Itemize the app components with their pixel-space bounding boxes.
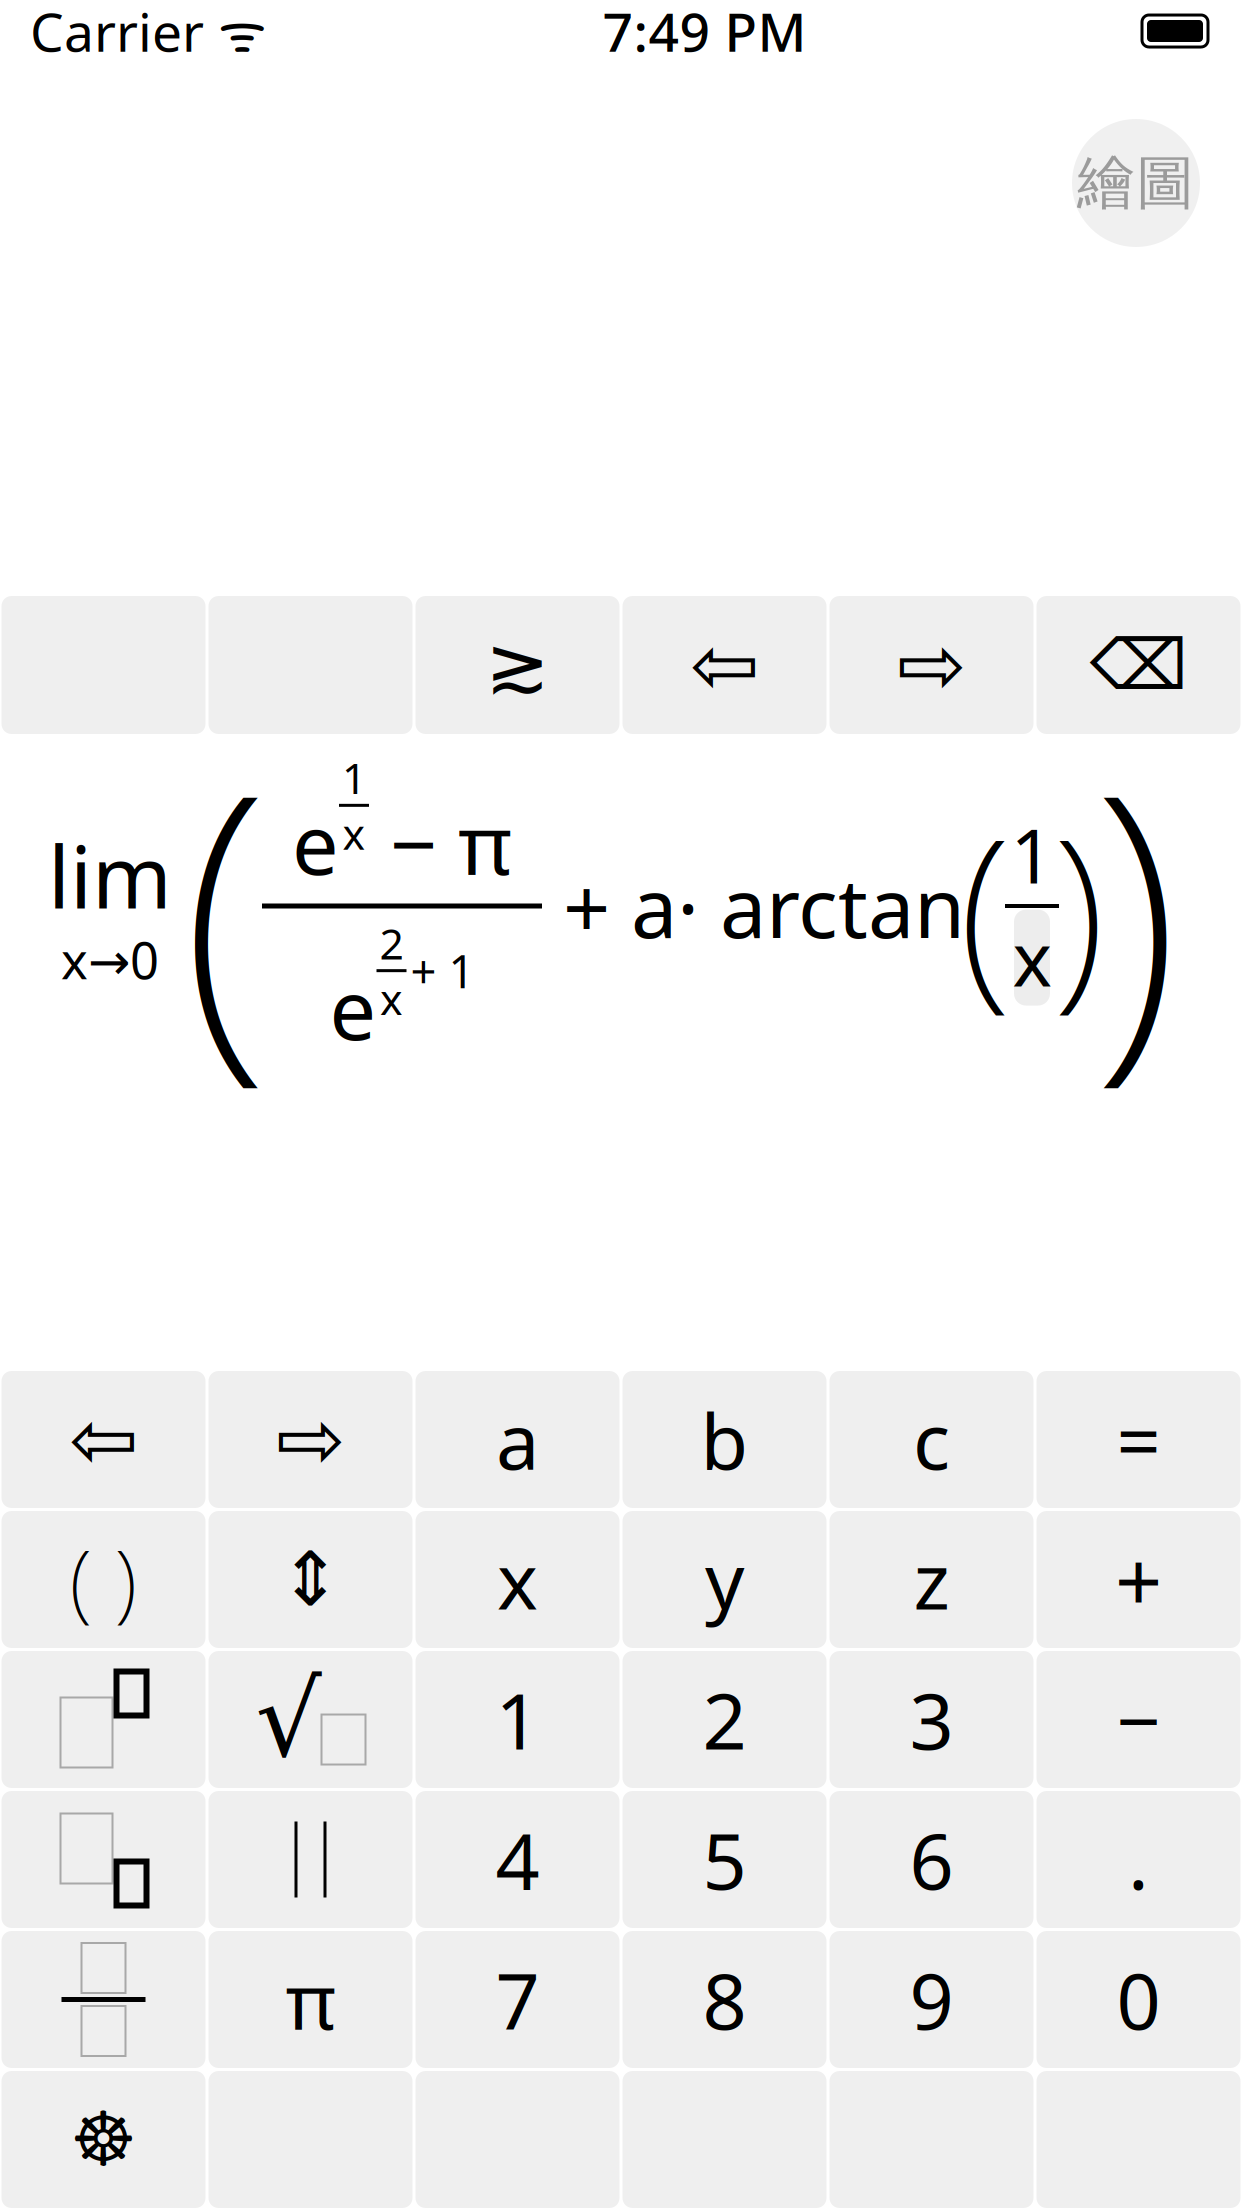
staticText: ( — [958, 773, 1011, 1039]
button[interactable]: Settings — [1, 2071, 205, 2208]
staticText: ⇦ — [690, 618, 759, 712]
staticText: 繪圖 — [1077, 147, 1195, 219]
button[interactable]: 5 — [622, 1791, 826, 1928]
button[interactable]: 6 — [829, 1791, 1033, 1928]
staticText: − π — [369, 788, 512, 897]
staticText: ᯤ — [204, 0, 267, 66]
button[interactable]: − — [1036, 1651, 1240, 1788]
button[interactable]: y — [622, 1511, 826, 1648]
button[interactable]: Fraction — [1, 1931, 205, 2068]
staticText: . — [1128, 1808, 1149, 1911]
button[interactable]: z — [829, 1511, 1033, 1648]
staticText: x→0 — [61, 926, 159, 993]
staticText: + — [1115, 1525, 1162, 1634]
button[interactable]: Move left — [1, 1371, 205, 1508]
staticText: x — [1012, 908, 1051, 1007]
button[interactable]: π — [208, 1931, 412, 2068]
staticText: Carrier — [30, 0, 204, 66]
staticText: 2 — [379, 914, 403, 971]
staticText: 4 — [495, 1808, 539, 1911]
staticText: 9 — [909, 1948, 953, 2051]
staticText: 8 — [702, 1948, 746, 2051]
button[interactable]: Delete — [1036, 596, 1240, 734]
button[interactable]: Greater or equal — [415, 596, 619, 734]
staticText: 2 — [702, 1668, 746, 1771]
button[interactable]: 2 — [622, 1651, 826, 1788]
button[interactable]: c — [829, 1371, 1033, 1508]
staticText: lim — [48, 819, 172, 932]
button[interactable]: Absolute value — [208, 1791, 412, 1928]
button[interactable]: Resize — [208, 1511, 412, 1648]
staticText: ≳ — [485, 621, 550, 709]
button[interactable]: 1 — [415, 1651, 619, 1788]
staticText: a· — [631, 851, 699, 961]
staticText: + 1 — [410, 941, 474, 1001]
staticText: b — [700, 1388, 748, 1491]
staticText: ⇦ — [69, 1393, 138, 1486]
staticText: y — [705, 1528, 744, 1631]
button[interactable]: a — [415, 1371, 619, 1508]
staticText: − — [1116, 1668, 1160, 1771]
staticText: z — [913, 1528, 949, 1631]
staticText: = — [1116, 1388, 1160, 1491]
staticText: ⇨ — [276, 1393, 345, 1486]
staticText: 7 — [495, 1948, 539, 2051]
staticText: √ — [255, 1660, 321, 1778]
staticText: a — [496, 1388, 539, 1491]
button[interactable]: 9 — [829, 1931, 1033, 2068]
staticText: 1 — [495, 1668, 539, 1771]
button[interactable]: Move right — [829, 596, 1033, 734]
button[interactable]: Exponent — [1, 1651, 205, 1788]
staticText: 5 — [702, 1808, 746, 1911]
button[interactable]: = — [1036, 1371, 1240, 1508]
button[interactable]: Subscript — [1, 1791, 205, 1928]
staticText: ( ) — [69, 1523, 137, 1636]
staticText: 1 — [1010, 805, 1053, 904]
staticText: e — [292, 788, 339, 897]
button[interactable]: b — [622, 1371, 826, 1508]
staticText: arctan — [699, 851, 965, 961]
staticText: ☸ — [70, 2097, 137, 2182]
staticText: + — [542, 851, 631, 961]
staticText: c — [913, 1388, 950, 1491]
button[interactable]: + — [1036, 1511, 1240, 1648]
button[interactable]: 繪圖 — [1072, 119, 1200, 247]
staticText: ( — [181, 685, 269, 1127]
button[interactable]: Square root — [208, 1651, 412, 1788]
staticText: ⇨ — [897, 618, 966, 712]
staticText: ⌫ — [1089, 626, 1187, 704]
button[interactable]: . — [1036, 1791, 1240, 1928]
staticText: 3 — [909, 1668, 953, 1771]
staticText: x — [497, 1528, 538, 1631]
staticText: x — [380, 970, 403, 1027]
button[interactable]: 4 — [415, 1791, 619, 1928]
button[interactable]: Parentheses — [1, 1511, 205, 1648]
staticText: ) — [1052, 773, 1105, 1039]
staticText: 7:49 PM — [602, 0, 806, 66]
button[interactable]: 3 — [829, 1651, 1033, 1788]
button[interactable]: 8 — [622, 1931, 826, 2068]
staticText: ⇕ — [279, 1537, 342, 1622]
button[interactable]: 0 — [1036, 1931, 1240, 2068]
button[interactable]: Move right — [208, 1371, 412, 1508]
staticText: e — [329, 953, 376, 1063]
staticText: π — [285, 1948, 335, 2051]
staticText: 1 — [342, 749, 366, 806]
button[interactable]: 7 — [415, 1931, 619, 2068]
button[interactable]: x — [415, 1511, 619, 1648]
staticText: 6 — [909, 1808, 953, 1911]
staticText: x — [342, 805, 365, 861]
staticText: ) — [1092, 685, 1180, 1127]
staticText: 0 — [1116, 1948, 1160, 2051]
button[interactable]: Move left — [622, 596, 826, 734]
